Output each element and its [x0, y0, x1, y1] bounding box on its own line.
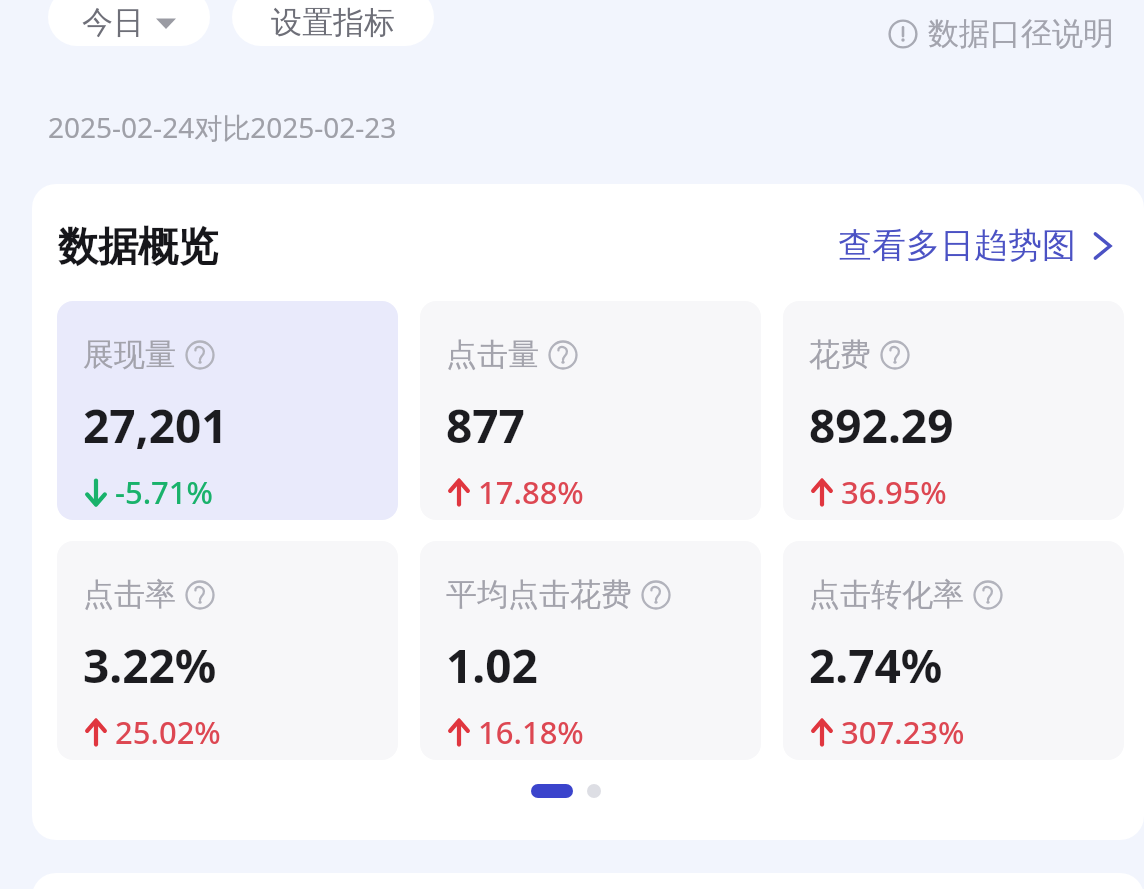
staticText: 307.23%: [841, 711, 965, 753]
staticText: 2025-02-24对比2025-02-23: [48, 108, 397, 146]
staticText: 892.29: [809, 394, 954, 457]
staticText: 平均点击花费: [446, 575, 632, 614]
button[interactable]: 点击量: [420, 301, 761, 520]
other: 点击率 说明: [185, 580, 215, 610]
other: 点击转化率 说明: [973, 580, 1003, 610]
button[interactable]: 查看多日趋势图: [834, 220, 1118, 271]
other: 展现量 说明: [185, 340, 215, 370]
button[interactable]: 花费: [783, 301, 1124, 520]
button[interactable]: 平均点击花费: [420, 541, 761, 760]
staticText: 查看多日趋势图: [838, 224, 1076, 267]
staticText: 数据概览: [58, 221, 218, 271]
button[interactable]: 展现量: [57, 301, 398, 520]
other: 点击量 说明: [548, 340, 578, 370]
staticText: 点击率: [83, 575, 176, 614]
staticText: 25.02%: [115, 711, 221, 753]
staticText: 展现量: [83, 335, 176, 374]
staticText: 今日: [82, 3, 144, 42]
staticText: 16.18%: [478, 711, 584, 753]
staticText: 36.95%: [841, 471, 947, 513]
staticText: 点击转化率: [809, 575, 964, 614]
staticText: 3.22%: [83, 634, 217, 697]
staticText: 数据口径说明: [928, 14, 1114, 53]
staticText: -5.71%: [115, 471, 213, 513]
button[interactable]: 数据口径说明: [884, 10, 1118, 57]
staticText: 17.88%: [478, 471, 584, 513]
button[interactable]: 点击率: [57, 541, 398, 760]
staticText: 27,201: [83, 394, 228, 457]
staticText: 2.74%: [809, 634, 943, 697]
staticText: 花费: [809, 335, 871, 374]
button[interactable]: 设置指标: [232, 0, 434, 46]
other: 花费 说明: [880, 340, 910, 370]
staticText: 1.02: [446, 634, 538, 697]
staticText: 877: [446, 394, 525, 457]
button[interactable]: 今日: [48, 0, 210, 46]
staticText: 设置指标: [271, 3, 395, 42]
button[interactable]: 点击转化率: [783, 541, 1124, 760]
staticText: 点击量: [446, 335, 539, 374]
other: 平均点击花费 说明: [641, 580, 671, 610]
